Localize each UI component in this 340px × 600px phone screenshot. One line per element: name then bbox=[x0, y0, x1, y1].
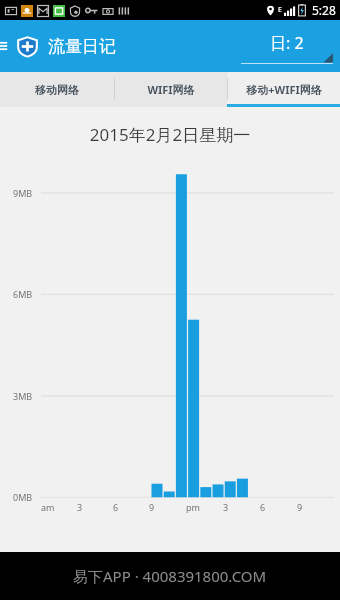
button[interactable]: 日: 2 bbox=[241, 27, 333, 65]
staticText: 0MB bbox=[13, 491, 33, 503]
staticText: 9 bbox=[297, 501, 303, 513]
staticText: 9MB bbox=[13, 187, 33, 199]
staticText: E bbox=[278, 5, 282, 15]
staticText: 6MB bbox=[13, 288, 33, 300]
staticText: 6 bbox=[113, 501, 119, 513]
staticText: 6 bbox=[260, 501, 266, 513]
staticText: 9 bbox=[149, 501, 155, 513]
staticText: 3 bbox=[77, 501, 83, 513]
staticText: 3MB bbox=[13, 390, 33, 402]
staticText: pm bbox=[186, 501, 200, 513]
staticText: WIFI网络 bbox=[147, 82, 195, 97]
button[interactable]: 移动网络 bbox=[0, 72, 114, 107]
staticText: am bbox=[41, 501, 55, 513]
staticText: 流量日记 bbox=[48, 36, 116, 57]
button[interactable]: 移动+WIFI网络 bbox=[227, 72, 340, 107]
staticText: 易下APP · 4008391800.COM bbox=[73, 566, 267, 586]
staticText: 3 bbox=[223, 501, 229, 513]
staticText: 5:28 bbox=[312, 2, 336, 18]
staticText: 2015年2月2日星期一 bbox=[0, 123, 340, 146]
button[interactable]: WIFI网络 bbox=[114, 72, 227, 107]
button[interactable]: Open navigation menu bbox=[0, 20, 16, 72]
staticText: 日: 2 bbox=[270, 32, 304, 54]
staticText: 移动+WIFI网络 bbox=[246, 82, 322, 97]
staticText: 移动网络 bbox=[35, 83, 79, 97]
